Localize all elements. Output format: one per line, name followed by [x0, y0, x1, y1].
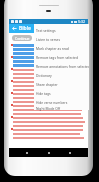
button[interactable]: Navigation	[67, 150, 73, 156]
button[interactable]: Night Mode Off	[34, 106, 89, 110]
button[interactable]: Continue	[12, 35, 32, 41]
button[interactable]: Share chapter	[34, 79, 89, 88]
button[interactable]: Remove tags from selected	[34, 52, 89, 61]
staticText: 5:32	[78, 19, 86, 24]
button[interactable]: Mark chapter as read	[34, 43, 89, 52]
staticText: Share chapter	[36, 82, 58, 86]
button[interactable]: Hide verse numbers	[34, 97, 89, 106]
staticText: Listen to verses	[36, 37, 61, 41]
staticText: Text settings	[36, 28, 56, 32]
staticText: Remove tags from selected	[36, 55, 78, 59]
staticText: Remove annotations from selected	[36, 64, 89, 68]
staticText: Hide tags	[36, 91, 51, 95]
button[interactable]: Navigation	[24, 150, 30, 156]
staticText: Hide verse numbers	[36, 100, 68, 104]
button[interactable]: Remove annotations from selected	[34, 61, 89, 70]
staticText: Mark chapter as read	[36, 46, 69, 50]
button[interactable]: Navigation	[46, 150, 52, 156]
staticText: Dictionary	[36, 73, 52, 77]
staticText: Bible	[19, 25, 31, 32]
button[interactable]: Back	[11, 25, 18, 32]
button[interactable]: Hide tags	[34, 88, 89, 97]
button[interactable]: Listen to verses	[34, 34, 89, 43]
button[interactable]: Dictionary	[34, 70, 89, 79]
button[interactable]: Text settings	[34, 25, 89, 34]
staticText: Night Mode Off	[36, 106, 61, 110]
staticText: Continue	[15, 36, 30, 41]
